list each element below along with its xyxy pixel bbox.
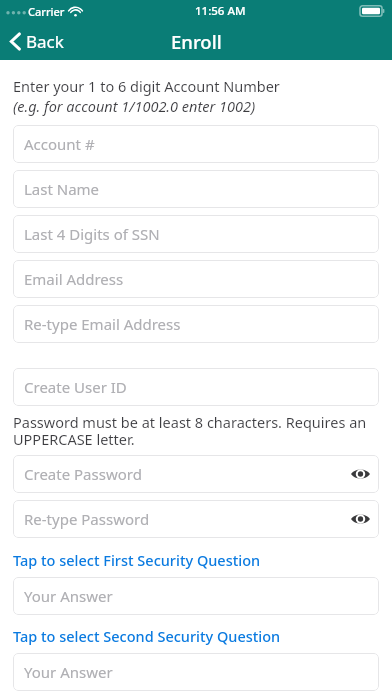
button[interactable]: Show password [341,500,379,538]
button[interactable]: Re-type Email Address [13,305,379,343]
staticText: Tap to select Second Security Question [13,626,281,646]
staticText: Tap to select First Security Question [13,550,261,570]
staticText: 11:56 AM [195,3,246,19]
staticText: Create User ID [24,377,127,397]
button[interactable]: Create Password [13,455,379,493]
staticText: Last Name [24,179,100,199]
button[interactable]: Re-type Password [13,500,379,538]
button[interactable]: Back [0,27,74,56]
staticText: Enroll [171,29,222,54]
staticText: (e.g. for account 1/1002.0 enter 1002) [13,96,256,116]
button[interactable]: Tap to select First Security Question [13,550,379,570]
button[interactable]: Last 4 Digits of SSN [13,215,379,253]
button[interactable]: Your Answer [13,577,379,615]
staticText: Your Answer [24,586,113,606]
button[interactable]: Account # [13,125,379,163]
button[interactable]: Your Answer [13,653,379,691]
button[interactable]: Email Address [13,260,379,298]
staticText: Your Answer [24,662,113,682]
button[interactable]: Tap to select Second Security Question [13,626,379,646]
staticText: Re-type Password [24,509,150,529]
staticText: Password must be at least 8 characters. … [13,412,379,449]
staticText: Back [26,30,64,53]
staticText: Re-type Email Address [24,314,181,334]
button[interactable]: Create User ID [13,368,379,406]
staticText: Email Address [24,269,124,289]
button[interactable]: Last Name [13,170,379,208]
staticText: Enter your 1 to 6 digit Account Number [13,76,280,96]
staticText: Last 4 Digits of SSN [24,224,160,244]
staticText: Create Password [24,464,142,484]
staticText: Carrier [28,4,65,19]
button[interactable]: Show password [341,455,379,493]
staticText: Account # [24,134,95,154]
